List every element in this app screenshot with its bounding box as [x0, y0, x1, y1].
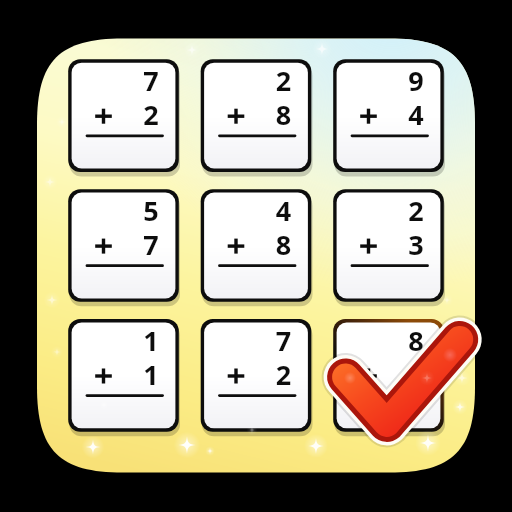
button[interactable] — [0, 0, 512, 512]
